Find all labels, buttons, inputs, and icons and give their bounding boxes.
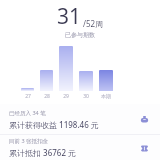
other: Coupon details xyxy=(137,141,151,155)
button[interactable]: 已经历入 34 笔 xyxy=(0,104,160,134)
staticText: 29 xyxy=(63,93,69,100)
staticText: 27 xyxy=(25,93,31,100)
staticText: 28 xyxy=(44,93,50,100)
staticText: 累计抵扣 36762 元 xyxy=(9,147,77,158)
staticText: 本期 xyxy=(101,93,111,99)
staticText: 累计获得收益 1198.46 元 xyxy=(9,119,99,130)
other: Earnings details xyxy=(137,112,151,126)
staticText: 30 xyxy=(83,93,89,100)
staticText: 目前 3 张抵扣金 xyxy=(9,137,49,145)
staticText: 已参与期数 xyxy=(0,31,160,39)
staticText: 已经历入 34 笔 xyxy=(9,109,46,117)
staticText: 31 xyxy=(57,2,82,31)
button[interactable]: 目前 3 张抵扣金 xyxy=(0,135,160,160)
staticText: /52周 xyxy=(83,18,104,29)
